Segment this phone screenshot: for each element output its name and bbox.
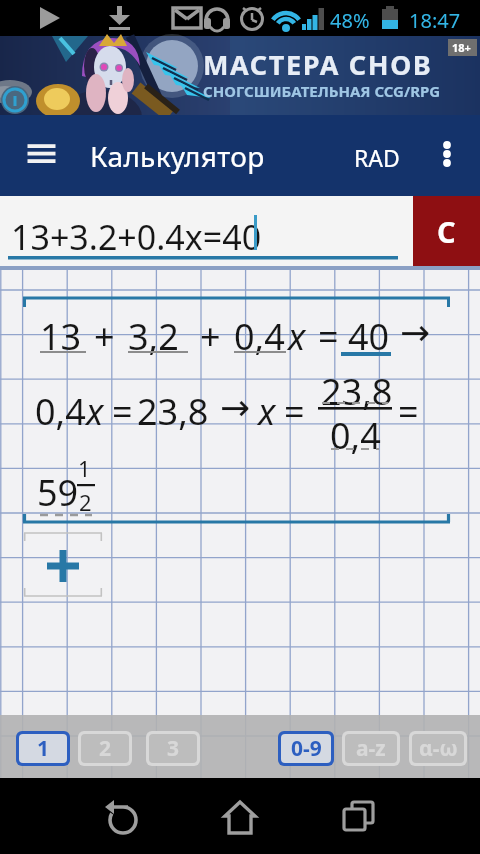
staticText: = (398, 387, 419, 436)
staticText: СНОГСШИБАТЕЛЬНАЯ CCG/RPG (203, 81, 441, 101)
button[interactable]: 3 (146, 731, 200, 766)
staticText: 2 (99, 734, 112, 763)
staticText: 3,2 (128, 312, 179, 361)
button[interactable] (92, 789, 152, 849)
staticText: a-z (356, 734, 386, 763)
staticText: 0,4 (330, 411, 381, 460)
staticText: α-ω (419, 734, 458, 763)
staticText: x (288, 312, 306, 361)
button[interactable]: 13+3.2+0.4x=40 (0, 196, 413, 266)
staticText: + (200, 312, 221, 361)
staticText: 23,8 (321, 367, 393, 416)
staticText: 40 (348, 312, 390, 361)
staticText: 1 (37, 734, 50, 763)
button[interactable]: МАСТЕРА СНОВ (0, 36, 480, 115)
button[interactable]: 2 (78, 731, 132, 766)
staticText: 1 (78, 453, 91, 483)
staticText: 2 (79, 487, 92, 517)
staticText: 48% (330, 7, 370, 34)
button[interactable] (430, 130, 466, 178)
staticText: 0,4 (35, 387, 86, 436)
button[interactable] (328, 789, 388, 849)
staticText: 3 (167, 734, 180, 763)
staticText: МАСТЕРА СНОВ (203, 46, 433, 83)
staticText: x (86, 387, 104, 436)
staticText: 13 (40, 312, 82, 361)
staticText: = (318, 312, 339, 361)
staticText: 13+3.2+0.4x=40 (11, 214, 262, 260)
staticText: C (437, 212, 456, 251)
button[interactable] (14, 130, 68, 174)
button[interactable]: RAD (354, 142, 400, 173)
staticText: 23,8 (137, 387, 209, 436)
button[interactable] (24, 533, 102, 596)
button[interactable]: C (413, 196, 480, 266)
staticText: + (94, 312, 115, 361)
button[interactable]: 1 (16, 731, 70, 766)
staticText: = (284, 387, 305, 436)
staticText: 18:47 (409, 7, 461, 34)
button[interactable]: 0-9 (278, 731, 334, 766)
button[interactable]: α-ω (409, 731, 467, 766)
staticText: 0,4 (234, 312, 285, 361)
staticText: 59 (37, 468, 79, 517)
staticText: x (258, 387, 276, 436)
staticText: → (400, 312, 431, 354)
staticText: 0-9 (291, 734, 322, 763)
staticText: = (112, 387, 133, 436)
button[interactable]: a-z (342, 731, 400, 766)
staticText: 18+ (452, 40, 471, 55)
staticText: Калькулятор (90, 137, 265, 175)
staticText: → (220, 387, 251, 429)
button[interactable] (210, 789, 270, 849)
